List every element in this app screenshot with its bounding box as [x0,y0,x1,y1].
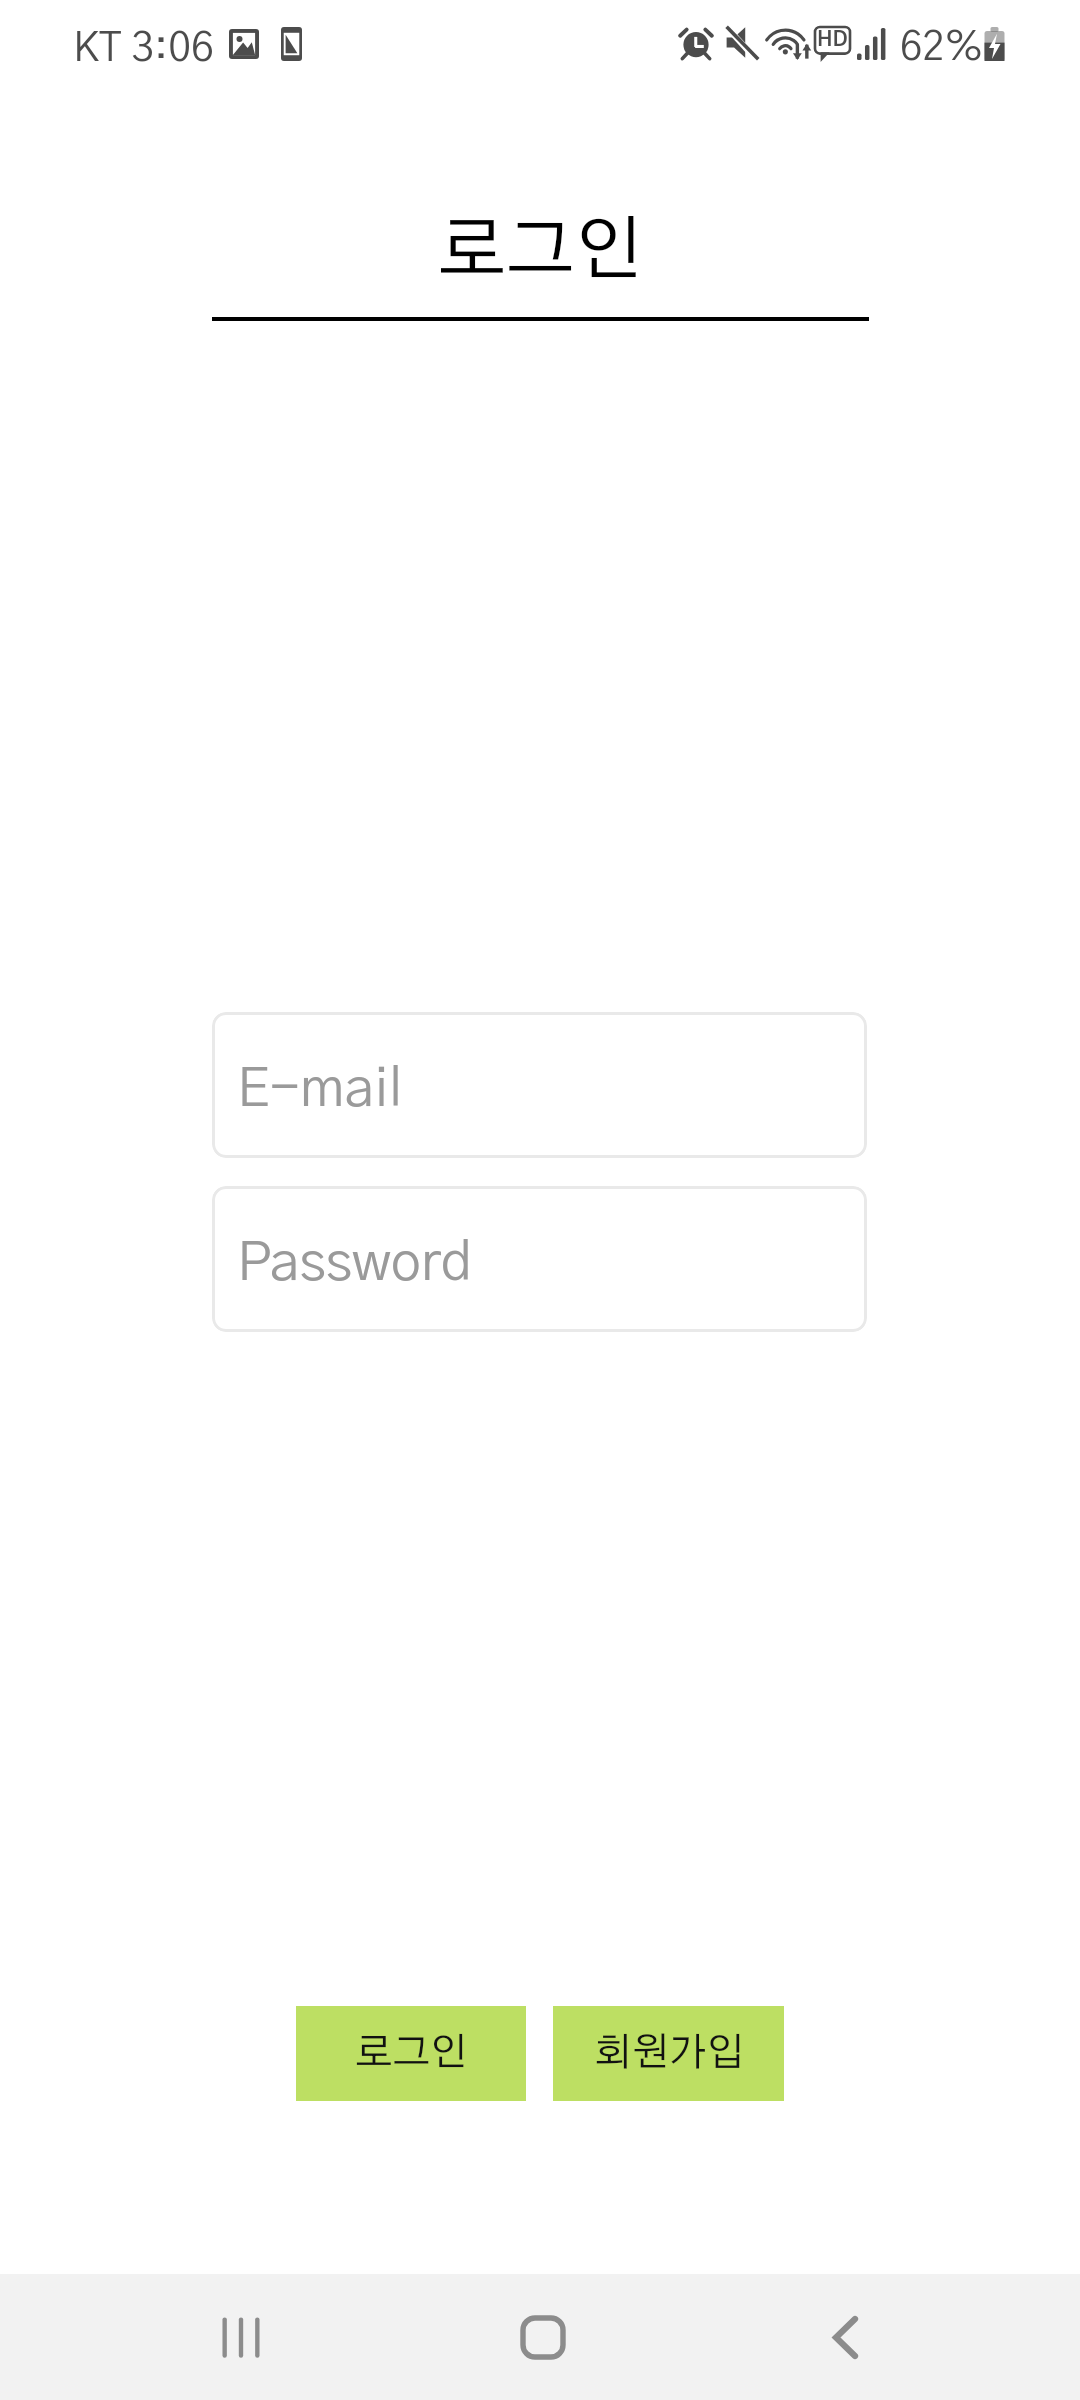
button[interactable]: Back [782,2274,908,2400]
staticText: HD [817,29,848,50]
button[interactable]: E-mail [212,1012,867,1158]
staticText: 로그인 [438,216,643,287]
staticText: Password [237,1237,473,1291]
staticText: 62% [900,28,984,68]
staticText: E-mail [237,1063,403,1117]
button[interactable]: Password [212,1186,867,1332]
button[interactable]: Recent apps [178,2274,304,2400]
staticText: 회원가입 [594,2034,744,2073]
button[interactable]: 로그인 [296,2006,526,2101]
button[interactable]: Home [480,2274,606,2400]
staticText: 로그인 [355,2034,468,2073]
staticText: KT 3:06 [73,28,214,69]
button[interactable]: 회원가입 [553,2006,784,2101]
